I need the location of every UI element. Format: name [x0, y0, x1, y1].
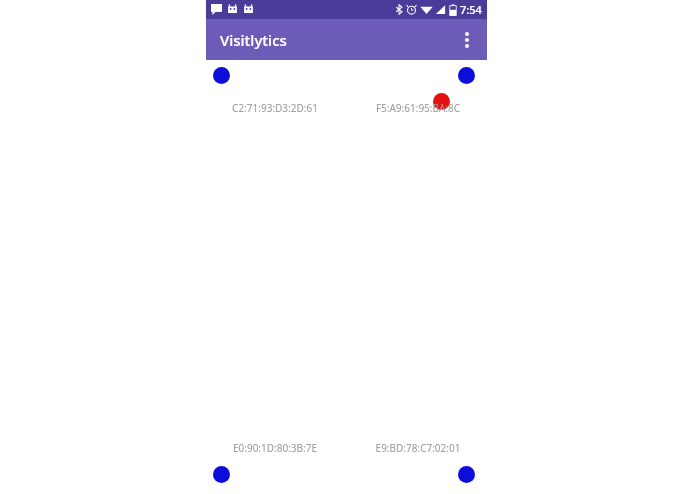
- other: Cellular signal: [435, 4, 446, 15]
- other: Wi-Fi: [420, 4, 433, 15]
- button[interactable]: Beacon E0:90:1D:80:3B:7E: [213, 466, 230, 483]
- staticText: Visitlytics: [220, 30, 287, 50]
- other: App notification: [243, 4, 254, 15]
- staticText: C2:71:93:D3:2D:61: [220, 101, 330, 115]
- other: App notification: [227, 4, 238, 15]
- staticText: F5:A9:61:95:BA:8C: [363, 101, 473, 115]
- button[interactable]: Current position: [433, 93, 450, 110]
- staticText: E9:BD:78:C7:02:01: [363, 441, 473, 455]
- other: Messages notification: [211, 4, 222, 15]
- staticText: 7:54: [460, 2, 482, 17]
- other: Alarm set: [406, 4, 417, 15]
- other: Battery: [449, 4, 457, 16]
- button[interactable]: Beacon C2:71:93:D3:2D:61: [213, 67, 230, 84]
- button[interactable]: More options: [453, 26, 481, 54]
- button[interactable]: Beacon F5:A9:61:95:BA:8C: [458, 67, 475, 84]
- button[interactable]: Beacon E9:BD:78:C7:02:01: [458, 466, 475, 483]
- staticText: E0:90:1D:80:3B:7E: [220, 441, 330, 455]
- other: Bluetooth on: [395, 4, 403, 15]
